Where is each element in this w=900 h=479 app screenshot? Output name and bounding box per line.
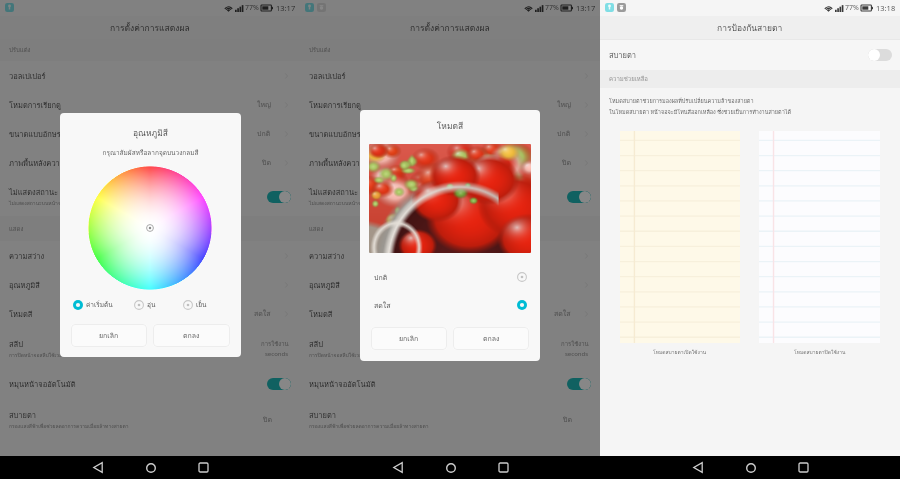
button[interactable]: โหมดการเรียกดู xyxy=(0,90,300,119)
staticText: seconds xyxy=(565,350,589,358)
button[interactable]: ค่าเริ่มต้น xyxy=(73,300,134,310)
staticText: seconds xyxy=(265,350,289,358)
staticText: สบายตา xyxy=(309,409,337,421)
staticText: หมุนหน้าจออัตโนมัติ xyxy=(309,378,376,390)
staticText: ปิด xyxy=(262,157,271,168)
button[interactable]: ภาพพื้นหลังความละเอียด xyxy=(300,148,600,177)
staticText: ปกติ xyxy=(374,272,388,283)
button[interactable]: สดใส xyxy=(360,291,540,319)
button[interactable]: Home xyxy=(724,456,777,479)
staticText: แสดง xyxy=(9,224,24,234)
button[interactable]: วอลเปเปอร์ xyxy=(300,61,600,90)
button[interactable]: Toggle xyxy=(567,191,591,203)
staticText: การปิดหน้าจอสลีปใช้เวลา 30 seconds xyxy=(309,351,393,359)
staticText: ยกเลิก xyxy=(99,330,119,341)
staticText: 13:17 xyxy=(576,3,596,13)
button[interactable]: Home xyxy=(124,456,177,479)
staticText: การตั้งค่าการแสดงผล xyxy=(410,21,490,35)
button[interactable]: โหมดสี xyxy=(0,299,300,328)
button[interactable]: ความสว่าง xyxy=(0,241,300,270)
button[interactable]: Recent apps xyxy=(777,456,830,479)
staticText: วอลเปเปอร์ xyxy=(9,70,46,82)
staticText: วอลเปเปอร์ xyxy=(309,70,346,82)
button[interactable]: สบายตา xyxy=(600,40,900,70)
staticText: อุณหภูมิสี xyxy=(9,279,40,291)
staticText: 13:17 xyxy=(276,3,296,13)
staticText: ปิด xyxy=(263,414,272,425)
button[interactable]: Back xyxy=(71,456,124,479)
staticText: การตั้งค่าการแสดงผล xyxy=(110,21,190,35)
button[interactable]: ภาพพื้นหลังความละเอียด xyxy=(0,148,300,177)
button[interactable]: Home xyxy=(424,456,477,479)
staticText: ภาพพื้นหลังความละเอียด xyxy=(9,157,90,169)
button[interactable]: โหมดการเรียกดู xyxy=(300,90,600,119)
staticText: กรองแสงสีฟ้าเพื่อช่วยลดอาการความเมื่อยล้… xyxy=(9,422,129,430)
staticText: ค่าเริ่มต้น xyxy=(86,300,113,310)
button[interactable]: ไม่แสดงสถานะ xyxy=(300,177,600,216)
staticText: ยกเลิก xyxy=(399,333,419,344)
button[interactable]: Toggle xyxy=(267,191,291,203)
staticText: โหมดสี xyxy=(9,308,33,320)
staticText: กรองแสงสีฟ้าเพื่อช่วยลดอาการความเมื่อยล้… xyxy=(309,422,429,430)
button[interactable]: Recent apps xyxy=(477,456,530,479)
staticText: อุณหภูมิสี xyxy=(60,126,241,140)
staticText: ตกลง xyxy=(183,330,200,341)
button[interactable]: ยกเลิก xyxy=(71,324,147,347)
staticText: โหมดการเรียกดู xyxy=(9,99,61,111)
staticText: ความช่วยเหลือ xyxy=(609,74,648,84)
button[interactable]: อุณหภูมิสี xyxy=(0,270,300,299)
button[interactable]: วอลเปเปอร์ xyxy=(0,61,300,90)
button[interactable]: ไม่แสดงสถานะ xyxy=(0,177,300,216)
button[interactable]: ขนาดแบบอักษร xyxy=(300,119,600,148)
button[interactable]: โหมดสี xyxy=(300,299,600,328)
staticText: การใช้งาน xyxy=(261,339,289,349)
staticText: สดใส xyxy=(554,308,571,319)
button[interactable]: Toggle xyxy=(868,49,892,61)
staticText: การปิดหน้าจอสลีปใช้เวลา 30 seconds xyxy=(9,351,93,359)
staticText: 77% xyxy=(545,3,559,13)
button[interactable]: สลีป xyxy=(300,328,600,368)
staticText: ในโหมดสบายตา หน้าจอจะมีโทนสีออกเหลือง ซึ… xyxy=(609,108,792,117)
button[interactable]: ยกเลิก xyxy=(371,327,447,350)
staticText: อุณหภูมิสี xyxy=(309,279,340,291)
staticText: โหมดสบายตาช่วยการมองผลที่ปรับเปลี่ยนความ… xyxy=(609,97,754,106)
staticText: ปกติ xyxy=(257,128,271,139)
button[interactable]: เย็น xyxy=(183,300,232,310)
staticText: การใช้งาน xyxy=(561,339,589,349)
staticText: ใหญ่ xyxy=(257,99,271,110)
staticText: โหมดสบายตาปิดใช้งาน xyxy=(794,348,846,356)
button[interactable]: Recent apps xyxy=(177,456,230,479)
staticText: ความสว่าง xyxy=(9,250,45,262)
staticText: ภาพพื้นหลังความละเอียด xyxy=(309,157,390,169)
button[interactable]: หมุนหน้าจออัตโนมัติ xyxy=(0,368,300,399)
staticText: 77% xyxy=(245,3,259,13)
button[interactable]: Toggle xyxy=(567,378,591,390)
staticText: ใหญ่ xyxy=(557,99,571,110)
staticText: สลีป xyxy=(309,338,323,350)
staticText: ปกติ xyxy=(557,128,571,139)
button[interactable]: ตกลง xyxy=(153,324,230,347)
button[interactable]: สบายตา xyxy=(300,399,600,439)
staticText: ปรับแต่ง xyxy=(9,45,31,55)
button[interactable]: Toggle xyxy=(267,378,291,390)
staticText: สลีป xyxy=(9,338,23,350)
button[interactable]: ความสว่าง xyxy=(300,241,600,270)
button[interactable]: อุ่น xyxy=(134,300,183,310)
button[interactable]: ขนาดแบบอักษร xyxy=(0,119,300,148)
button[interactable]: สบายตา xyxy=(0,399,300,439)
staticText: โหมดการเรียกดู xyxy=(309,99,361,111)
staticText: ความสว่าง xyxy=(309,250,345,262)
button[interactable]: อุณหภูมิสี xyxy=(300,270,600,299)
staticText: ขนาดแบบอักษร xyxy=(309,128,361,140)
button[interactable]: หมุนหน้าจออัตโนมัติ xyxy=(300,368,600,399)
staticText: ขนาดแบบอักษร xyxy=(9,128,61,140)
staticText: ไม่แสดงสถานะบนหน้าจอ xyxy=(9,199,64,207)
staticText: โหมดสี xyxy=(309,308,333,320)
button[interactable]: ตกลง xyxy=(453,327,529,350)
button[interactable]: ปกติ xyxy=(360,263,540,291)
button[interactable]: Back xyxy=(371,456,424,479)
staticText: ไม่แสดงสถานะ xyxy=(9,186,59,198)
button[interactable]: สลีป xyxy=(0,328,300,368)
staticText: ไม่แสดงสถานะบนหน้าจอ xyxy=(309,199,364,207)
button[interactable]: Back xyxy=(671,456,724,479)
